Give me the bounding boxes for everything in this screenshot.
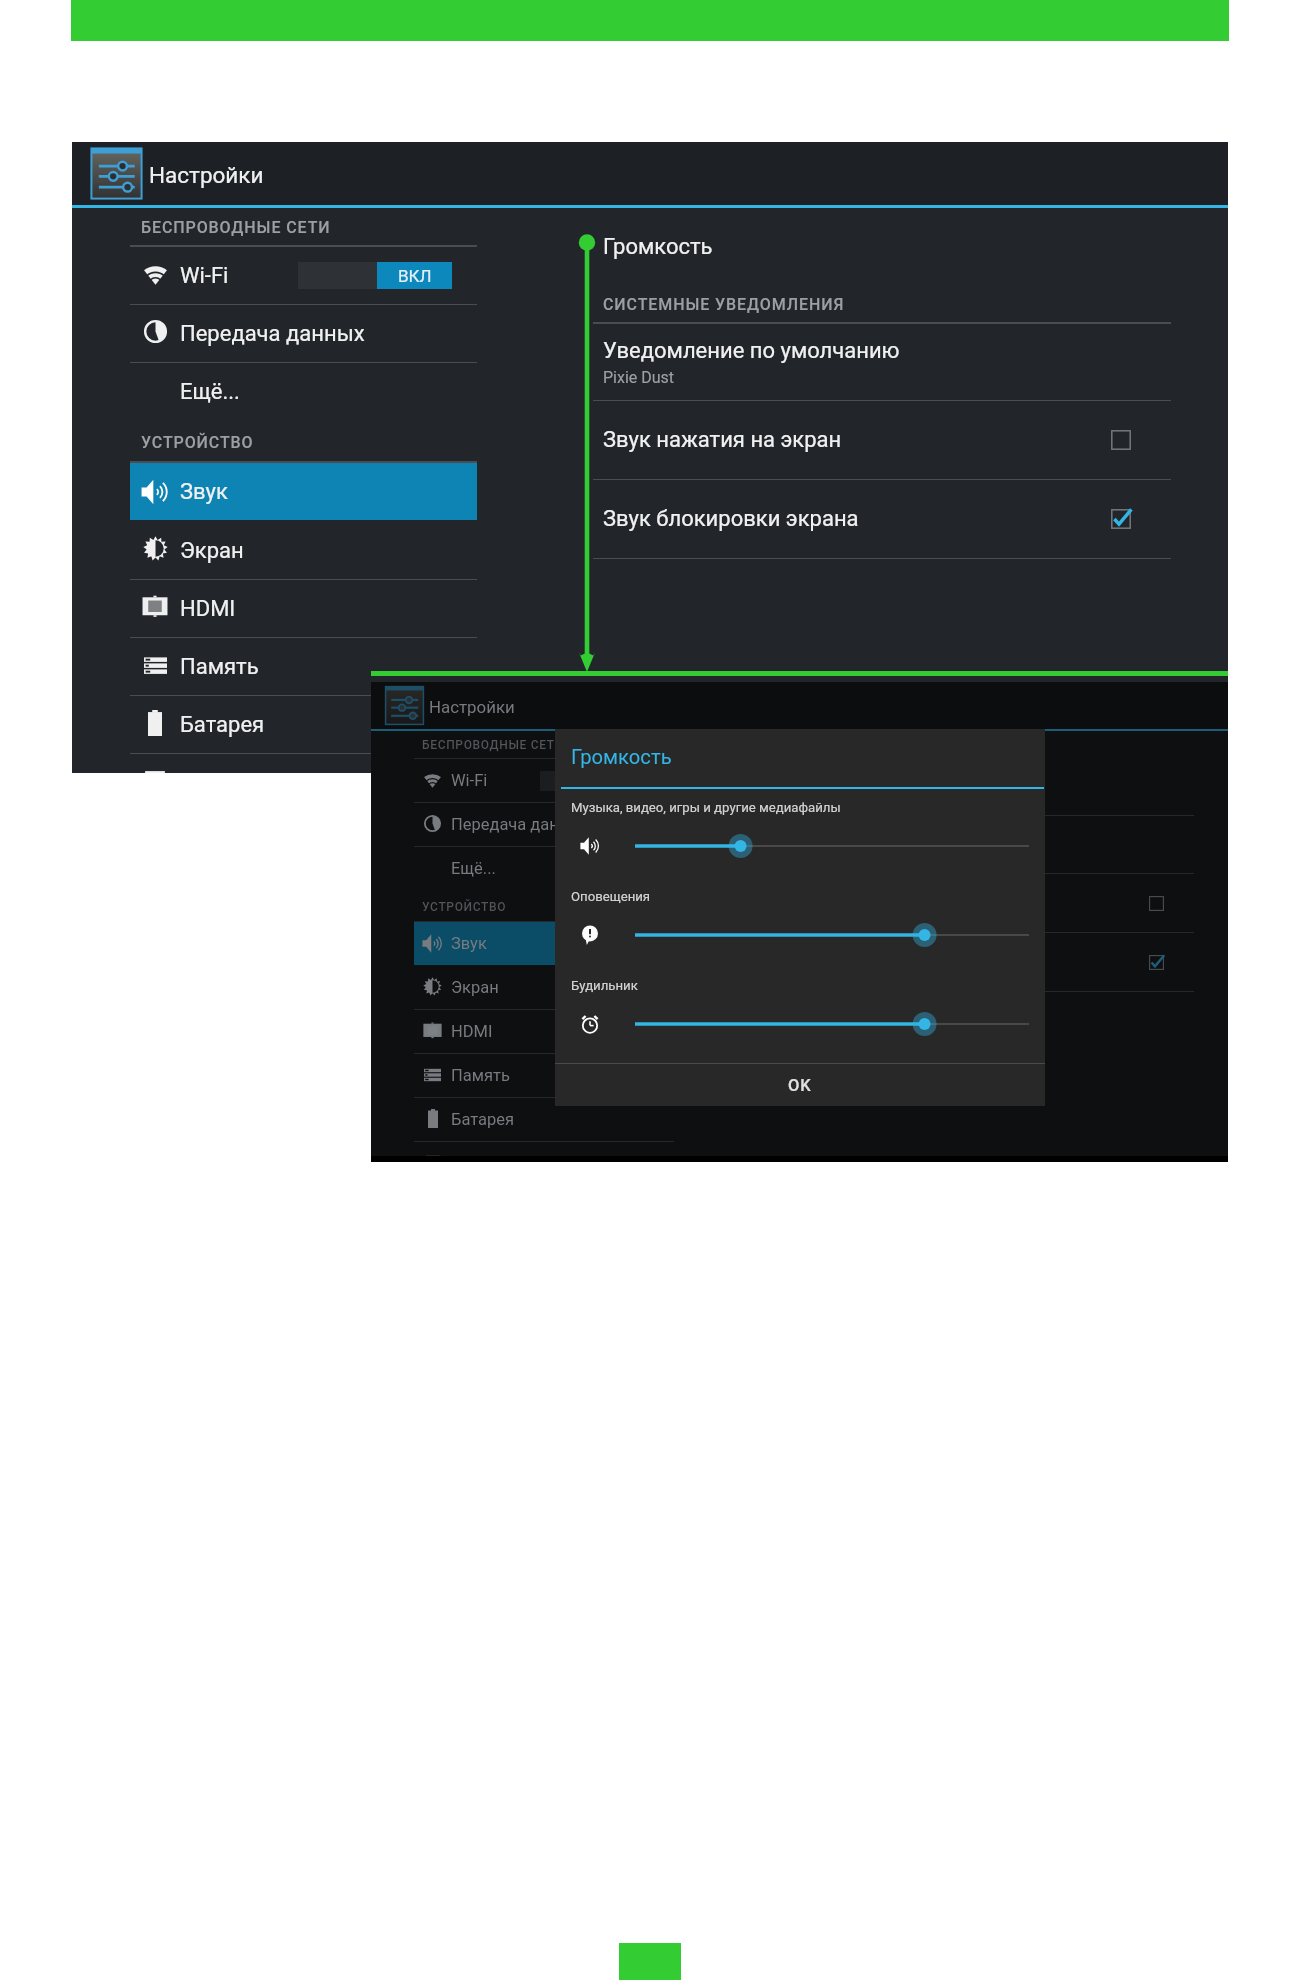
button[interactable]: Экран: [414, 966, 674, 1009]
button[interactable]: Память: [414, 1054, 674, 1097]
other: Unchecked: [1111, 430, 1131, 450]
button[interactable]: Батарея: [414, 1098, 674, 1141]
staticText: УСТРОЙСТВО: [141, 433, 254, 452]
button[interactable]: Передача данных: [130, 305, 477, 362]
button[interactable]: Wi-Fi: [130, 247, 477, 304]
other: Settings: [383, 684, 426, 727]
other: Checked: [1111, 509, 1131, 529]
staticText: Настройки: [429, 697, 515, 717]
staticText: УСТРОЙСТВО: [422, 900, 507, 914]
staticText: БЕСПРОВОДНЫЕ СЕТИ: [141, 218, 331, 237]
staticText: Настройки: [149, 162, 264, 188]
staticText: Wi-Fi: [451, 771, 488, 790]
button[interactable]: Звук: [414, 922, 674, 965]
staticText: Громкость: [603, 234, 713, 260]
staticText: Уведомление по умолчанию: [768, 827, 991, 846]
staticText: Pixie Dust: [603, 368, 675, 387]
staticText: Громкость: [571, 745, 672, 769]
staticText: Wi-Fi: [180, 263, 229, 289]
staticText: Передача данных: [451, 815, 590, 834]
staticText: OK: [788, 1076, 812, 1095]
staticText: Уведомление по умолчанию: [603, 338, 900, 364]
staticText: HDMI: [451, 1022, 493, 1041]
other: Checked: [1149, 955, 1164, 970]
staticText: Оповещения: [571, 889, 651, 904]
button[interactable]: HDMI: [130, 580, 477, 637]
button[interactable]: Приложения: [130, 754, 477, 773]
button[interactable]: Ещё...: [130, 363, 477, 420]
staticText: Память: [180, 654, 259, 680]
button[interactable]: Передача данных: [414, 803, 674, 846]
button[interactable]: HDMI: [414, 1010, 674, 1053]
other: Unchecked: [1149, 896, 1164, 911]
staticText: БЕСПРОВОДНЫЕ СЕТИ: [422, 738, 564, 752]
other: Settings: [88, 145, 145, 202]
staticText: Музыка, видео, игры и другие медиафайлы: [571, 800, 841, 815]
staticText: ВКЛ: [398, 266, 432, 286]
staticText: Будильник: [571, 978, 638, 993]
staticText: Приложения: [451, 1154, 550, 1162]
button[interactable]: Звук нажатия на экран: [603, 401, 1171, 479]
staticText: Экран: [180, 538, 244, 564]
button[interactable]: Батарея: [130, 696, 477, 753]
staticText: Ещё...: [451, 859, 496, 878]
button[interactable]: ВКЛ: [540, 771, 655, 791]
staticText: ВКЛ: [614, 774, 640, 789]
staticText: Ещё...: [180, 379, 240, 405]
button[interactable]: Wi-Fi: [414, 759, 674, 802]
button[interactable]: Уведомление по умолчанию: [768, 816, 1194, 873]
button[interactable]: Приложения: [414, 1142, 674, 1162]
staticText: Память: [451, 1066, 510, 1085]
staticText: Экран: [451, 978, 499, 997]
button[interactable]: Ещё...: [414, 847, 674, 890]
staticText: СИСТЕМНЫЕ УВЕДОМЛЕНИЯ: [603, 295, 845, 314]
staticText: Звук нажатия на экран: [603, 427, 842, 453]
button[interactable]: Уведомление по умолчанию: [603, 324, 1171, 400]
button[interactable]: Звук блокировки экрана: [603, 480, 1171, 558]
button[interactable]: Звук: [130, 463, 477, 520]
button[interactable]: Память: [130, 638, 477, 695]
button[interactable]: Звук нажатия на экран: [768, 874, 1194, 932]
staticText: Батарея: [180, 712, 265, 738]
staticText: Звук: [451, 934, 487, 953]
staticText: HDMI: [180, 596, 236, 622]
staticText: Передача данных: [180, 321, 365, 347]
button[interactable]: ВКЛ: [298, 262, 452, 289]
button[interactable]: Звук блокировки экрана: [768, 933, 1194, 991]
staticText: Звук блокировки экрана: [603, 506, 859, 532]
button[interactable]: Экран: [130, 522, 477, 579]
staticText: СИСТЕМНЫЕ УВЕДОМЛЕНИЯ: [768, 795, 949, 809]
staticText: Батарея: [451, 1110, 514, 1129]
button[interactable]: OK: [555, 1064, 1045, 1106]
staticText: Звук: [180, 479, 228, 505]
